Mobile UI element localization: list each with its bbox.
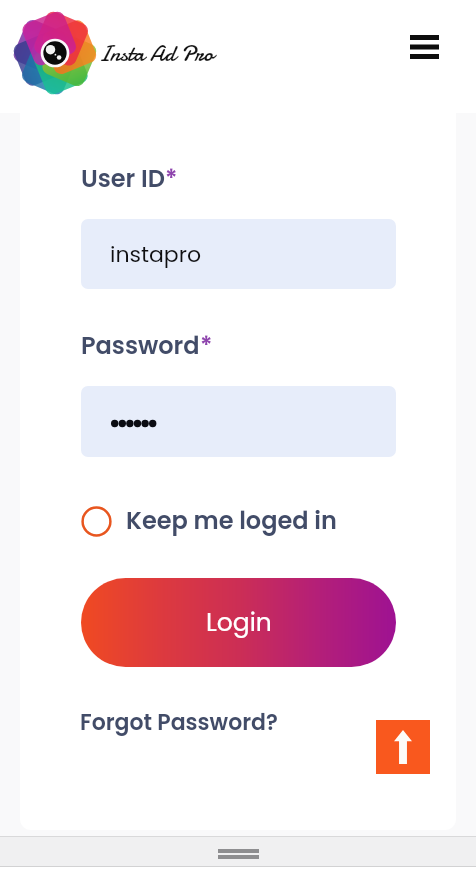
button[interactable]: Menu [396,19,452,75]
staticText: * [165,162,178,196]
staticText: instapro [110,239,202,270]
staticText: * [200,329,213,363]
staticText: Insta Ad Pro [98,38,214,70]
button[interactable]: Resize handle [218,849,259,859]
staticText: Login [206,605,272,640]
button[interactable]: instapro [81,219,396,289]
button[interactable] [81,386,396,457]
staticText: Password [81,329,200,363]
button[interactable]: Keep me loged in [81,504,337,538]
button[interactable]: Login [81,578,396,667]
staticText: User ID [81,162,165,196]
button[interactable]: Scroll to top [376,720,430,774]
staticText: Keep me loged in [126,504,337,538]
button[interactable]: Forgot Password? [80,707,278,738]
